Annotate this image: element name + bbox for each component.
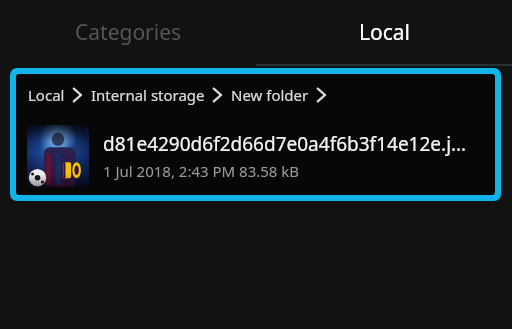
staticText: d81e4290d6f2d66d7e0a4f6b3f14e12e.j… xyxy=(103,131,467,157)
staticText: 1 Jul 2018, 2:43 PM 83.58 kB xyxy=(103,161,300,181)
button[interactable]: New folder xyxy=(230,85,310,105)
button[interactable]: Categories xyxy=(0,0,256,64)
button[interactable]: Local xyxy=(256,0,512,64)
button[interactable]: Internal storage xyxy=(90,85,206,105)
other: Image thumbnail xyxy=(27,125,89,187)
button[interactable]: Local xyxy=(16,74,495,195)
staticText: Internal storage xyxy=(91,85,205,105)
button[interactable]: Local xyxy=(27,85,66,105)
staticText: New folder xyxy=(231,85,309,105)
staticText: Local xyxy=(28,85,65,105)
staticText: Local xyxy=(359,18,410,47)
staticText: Categories xyxy=(75,18,182,47)
